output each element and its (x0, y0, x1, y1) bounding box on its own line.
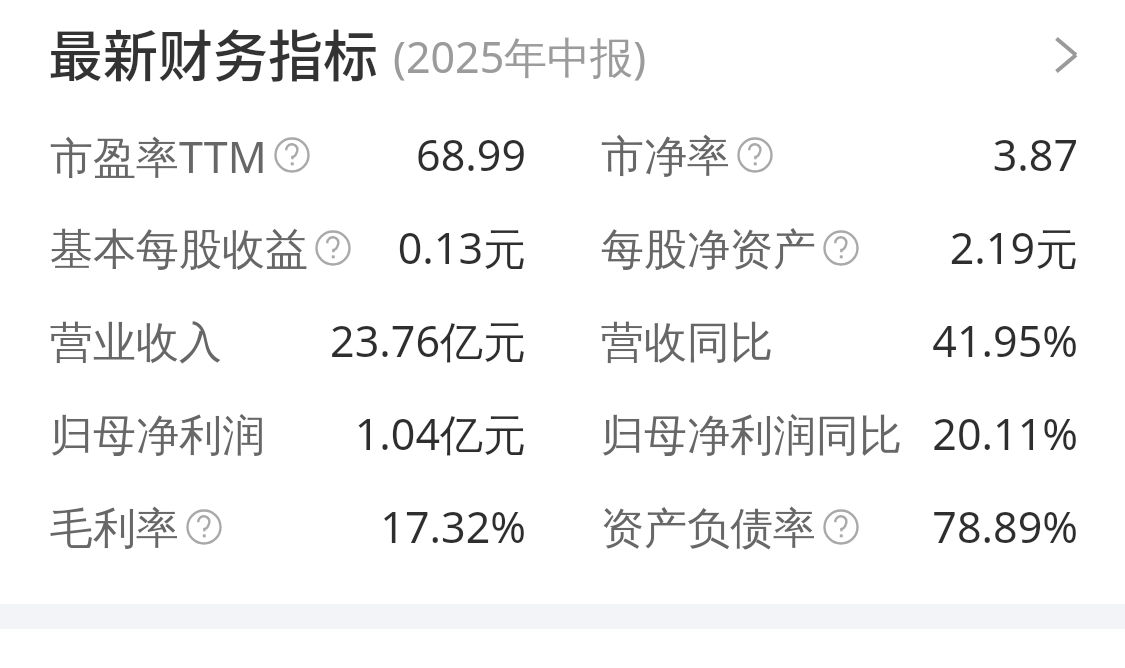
staticText: 毛利率 (50, 502, 179, 556)
button[interactable]: 毛利率 (50, 482, 526, 575)
staticText: 每股净资产 (601, 223, 816, 277)
other: 查看更多财务指标 (1054, 35, 1075, 75)
staticText: 营业收入 (50, 316, 222, 370)
button[interactable]: 市净率 (601, 110, 1078, 203)
staticText: 1.04亿元 (265, 404, 526, 463)
staticText: 市净率 (601, 130, 730, 184)
staticText: 20.11% (902, 404, 1078, 463)
staticText: 最新财务指标 (48, 12, 379, 92)
button[interactable]: 基本每股收益 (50, 203, 526, 296)
staticText: 41.95% (773, 311, 1078, 370)
button[interactable]: 最新财务指标 (0, 0, 1125, 110)
staticText: 市盈率TTM (50, 127, 267, 186)
button[interactable]: 归母净利润 (50, 389, 526, 482)
button[interactable]: 资产负债率 指标说明 (823, 509, 859, 545)
staticText: 归母净利润 (50, 409, 265, 463)
staticText: 0.13元 (351, 218, 526, 277)
button[interactable]: 每股净资产 指标说明 (823, 230, 859, 266)
staticText: 23.76亿元 (222, 311, 526, 370)
button[interactable]: 归母净利润同比 (601, 389, 1078, 482)
staticText: (2025年中报) (393, 27, 647, 86)
staticText: 78.89% (859, 497, 1078, 556)
button[interactable]: 资产负债率 (601, 482, 1078, 575)
button[interactable]: 每股净资产 (601, 203, 1078, 296)
button[interactable]: 基本每股收益 指标说明 (315, 230, 351, 266)
staticText: 3.87 (773, 125, 1078, 184)
staticText: 归母净利润同比 (601, 409, 902, 463)
staticText: 2.19元 (859, 218, 1078, 277)
staticText: 资产负债率 (601, 502, 816, 556)
button[interactable]: 毛利率 指标说明 (186, 509, 222, 545)
button[interactable]: 营业收入 (50, 296, 526, 389)
staticText: 基本每股收益 (50, 223, 308, 277)
staticText: 营收同比 (601, 316, 773, 370)
staticText: 68.99 (310, 125, 526, 184)
button[interactable]: 市盈率TTM (50, 110, 526, 203)
button[interactable]: 营收同比 (601, 296, 1078, 389)
staticText: 17.32% (222, 497, 526, 556)
button[interactable]: 市净率 指标说明 (737, 137, 773, 173)
button[interactable]: 市盈率TTM 指标说明 (274, 137, 310, 173)
